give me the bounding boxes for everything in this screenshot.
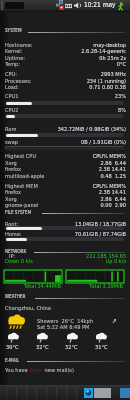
staticText: 30°C	[6, 344, 19, 351]
staticText: Kernel:	[5, 48, 23, 55]
staticText: Hostname:	[5, 42, 33, 49]
staticText: Total 24.44MiB	[6, 283, 61, 290]
staticText: E-MAIL	[5, 358, 20, 363]
staticText: CPU1	[5, 93, 19, 100]
staticText: firefox	[5, 166, 21, 173]
staticText: Load:	[5, 84, 19, 91]
staticText: 8%	[86, 107, 126, 114]
staticText: 0°C	[46, 61, 126, 68]
staticText: 31°C	[95, 344, 108, 351]
staticText: IP:	[9, 253, 16, 260]
staticText: may-desktop	[46, 42, 126, 49]
staticText: 2.6.28-14-generic	[46, 48, 126, 55]
staticText: Ram	[5, 126, 17, 133]
staticText: Highest CPU	[5, 153, 37, 160]
button[interactable]: Keyboard layout	[65, 3, 72, 9]
staticText: 2.86 6.44	[66, 196, 126, 203]
button[interactable]: Window	[84, 388, 93, 398]
staticText: 222.185.154.65	[56, 253, 126, 260]
staticText: Showers 26°C 14kph	[37, 318, 93, 325]
staticText: SYSTEM	[5, 28, 22, 33]
button[interactable]: User status	[117, 2, 125, 11]
staticText: 0h 25m 2s	[46, 55, 126, 62]
staticText: Total 3.29MiB	[68, 283, 123, 290]
staticText: 342.72MiB / 0.98GiB (34%)	[36, 126, 126, 133]
staticText: 2993 MHz	[46, 71, 126, 78]
staticText: 0.00 2.90	[66, 202, 126, 209]
staticText: Xorg	[5, 160, 17, 167]
staticText: Root:	[5, 221, 19, 228]
staticText: 70.61GiB / 87.74GiB	[46, 231, 126, 238]
staticText: 13.04GiB / 18.77GiB	[46, 221, 126, 228]
staticText: CPU% MEM%	[66, 183, 126, 190]
staticText: 2.38 14.41	[66, 166, 126, 173]
staticText: 234 (1 running)	[46, 78, 126, 85]
staticText: 0B / 1.91GiB (0%)	[36, 139, 126, 146]
staticText: 2.38 14.41	[66, 189, 126, 196]
staticText: may	[103, 1, 116, 8]
staticText: 32°C	[65, 344, 78, 351]
staticText: Highest MEM	[5, 183, 38, 190]
staticText: 23%	[86, 93, 126, 100]
staticText: FILE SYSTEM	[5, 210, 32, 215]
staticText: Xorg	[5, 196, 17, 203]
staticText: 0.71 0.60 0.38	[46, 84, 126, 91]
staticText: Uptime:	[5, 55, 25, 62]
button[interactable]: Network	[56, 0, 63, 7]
staticText: new mail(s)	[43, 367, 74, 374]
staticText: swap	[5, 139, 19, 146]
staticText: Home:	[5, 231, 22, 238]
staticText: firefox	[5, 189, 21, 196]
staticText: CPU2	[5, 107, 19, 114]
staticText: 0.48 1.25	[66, 173, 126, 180]
staticText: Up 0 k/s	[76, 258, 126, 265]
button[interactable]: Recording	[59, 5, 64, 10]
staticText: CPU% MEM%	[66, 153, 126, 160]
staticText: 32°C	[36, 344, 49, 351]
staticText: Changzhou, China	[5, 305, 51, 312]
staticText: WEATHER	[5, 294, 26, 299]
staticText: 2.86 6.44	[66, 160, 126, 167]
staticText: You have	[5, 367, 30, 374]
staticText: multiload-apple	[5, 173, 45, 180]
staticText: Temp:	[5, 61, 21, 68]
staticText: 10:21	[84, 1, 101, 8]
staticText: CPU:	[5, 71, 17, 78]
staticText: gnome-panel	[5, 202, 39, 209]
staticText: ↗	[112, 317, 117, 325]
staticText: Error	[30, 367, 43, 374]
staticText: Processes:	[5, 78, 32, 85]
button[interactable]: Volume	[74, 2, 81, 9]
staticText: Down 0 k/s	[5, 258, 33, 265]
staticText: Sat 5:22 AM 6:49 PM	[37, 324, 90, 331]
staticText: NETWORK	[5, 249, 27, 254]
